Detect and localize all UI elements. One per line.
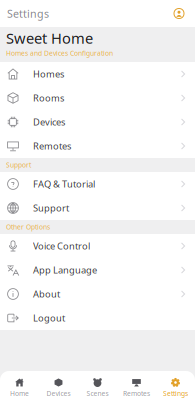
button[interactable]: Settings	[156, 378, 195, 398]
button[interactable]: Devices	[39, 378, 78, 398]
button[interactable]: Home	[0, 378, 39, 398]
staticText: Remotes	[33, 140, 71, 152]
staticText: Settings	[7, 6, 49, 21]
staticText: Settings	[163, 389, 188, 398]
button[interactable]: App Language	[0, 258, 195, 282]
staticText: FAQ & Tutorial	[33, 178, 95, 190]
staticText: Homes	[33, 68, 64, 80]
button[interactable]: About	[0, 282, 195, 306]
button[interactable]: FAQ & Tutorial	[0, 172, 195, 196]
staticText: Logout	[33, 312, 65, 324]
button[interactable]: Scenes	[78, 378, 117, 398]
staticText: Rooms	[33, 92, 64, 104]
staticText: Home	[10, 389, 29, 398]
button[interactable]: Homes	[0, 62, 195, 86]
staticText: About	[33, 288, 60, 300]
button[interactable]: Support	[0, 196, 195, 220]
button[interactable]: Logout	[0, 306, 195, 330]
staticText: Devices	[33, 116, 65, 128]
button[interactable]: Remotes	[117, 378, 156, 398]
staticText: Support	[33, 202, 69, 214]
button[interactable]: Profile	[169, 3, 195, 23]
staticText: Scenes	[86, 389, 108, 398]
staticText: Remotes	[123, 389, 150, 398]
staticText: Homes and Devices Configuration	[6, 49, 113, 58]
staticText: Support	[6, 161, 31, 169]
button[interactable]: Voice Control	[0, 234, 195, 258]
button[interactable]: Devices	[0, 110, 195, 134]
staticText: App Language	[33, 264, 97, 276]
staticText: Devices	[46, 389, 70, 398]
staticText: Other Options	[6, 223, 50, 231]
button[interactable]: Remotes	[0, 134, 195, 158]
button[interactable]: Rooms	[0, 86, 195, 110]
staticText: Sweet Home	[6, 28, 93, 48]
staticText: Voice Control	[33, 240, 90, 252]
